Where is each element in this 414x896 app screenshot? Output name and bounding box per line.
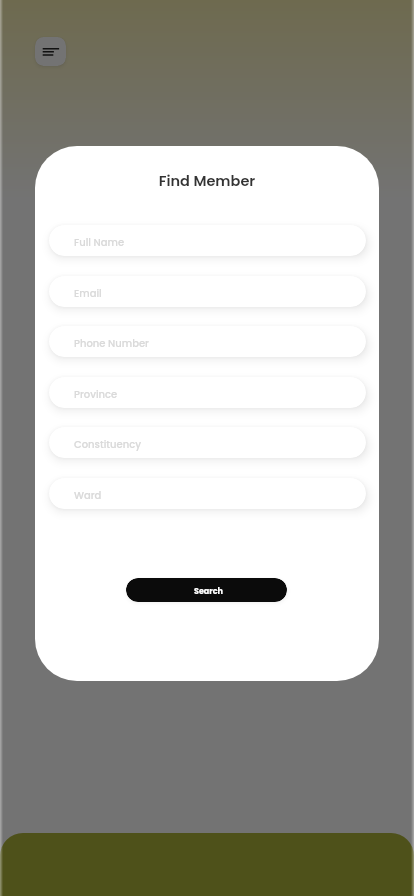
- button[interactable]: Ward: [49, 478, 366, 509]
- staticText: Province: [74, 387, 118, 401]
- staticText: Full Name: [74, 235, 125, 249]
- staticText: Ward: [74, 488, 102, 502]
- button[interactable]: Search: [126, 578, 287, 602]
- button[interactable]: Email: [49, 276, 366, 307]
- staticText: Search: [194, 586, 223, 597]
- staticText: Phone Number: [74, 336, 149, 350]
- button[interactable]: Constituency: [49, 427, 366, 458]
- staticText: Email: [74, 286, 102, 300]
- button[interactable]: Province: [49, 377, 366, 408]
- button[interactable]: Menu: [35, 37, 66, 66]
- staticText: Find Member: [35, 171, 379, 191]
- button[interactable]: Full Name: [49, 225, 366, 256]
- button[interactable]: Phone Number: [49, 326, 366, 357]
- staticText: Constituency: [74, 437, 141, 451]
